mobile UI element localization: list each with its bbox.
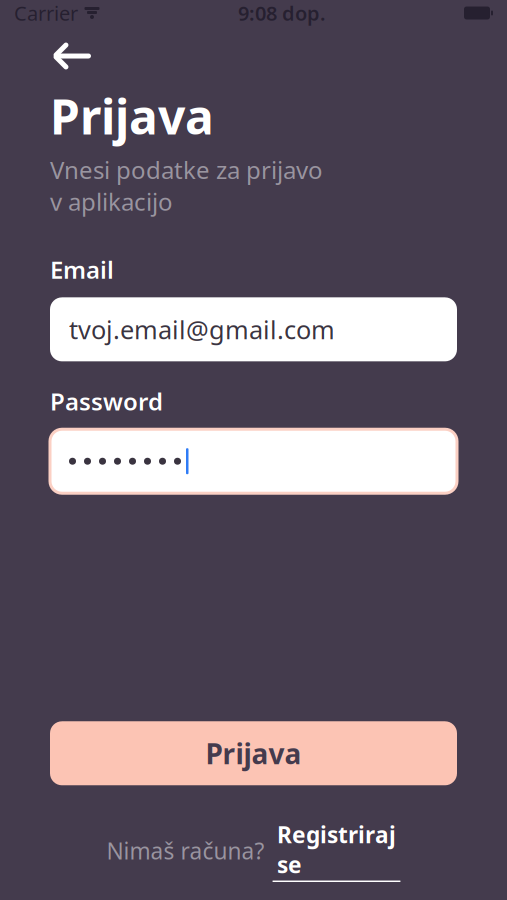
button[interactable]: Back: [45, 32, 101, 80]
staticText: Password: [50, 385, 163, 417]
button[interactable]: Registriraj se: [272, 819, 400, 882]
staticText: Prijava: [205, 735, 301, 772]
button[interactable]: [50, 429, 457, 493]
staticText: Nimaš računa?: [106, 836, 264, 866]
staticText: Email: [50, 253, 114, 285]
button[interactable]: Prijava: [50, 721, 457, 785]
staticText: Prijava: [50, 84, 214, 148]
staticText: Carrier: [14, 0, 78, 26]
staticText: Registriraj se: [277, 819, 396, 879]
staticText: 9:08 dop.: [238, 0, 326, 26]
staticText: Vnesi podatke za prijavo v aplikacijo: [50, 154, 323, 217]
staticText: tvoj.email@gmail.com: [69, 312, 335, 346]
button[interactable]: tvoj.email@gmail.com: [50, 297, 457, 361]
